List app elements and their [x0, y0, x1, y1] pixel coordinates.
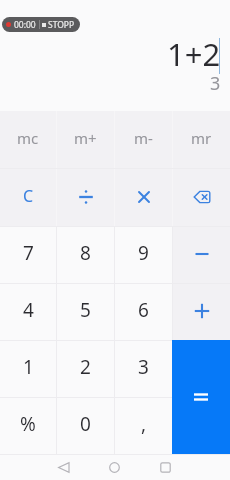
staticText: mr — [191, 128, 212, 148]
button[interactable]: 0 — [57, 398, 114, 454]
button[interactable]: 1 — [0, 341, 56, 397]
staticText: 5 — [80, 297, 91, 323]
button[interactable]: Plus — [173, 284, 230, 340]
button[interactable]: 9 — [115, 227, 172, 283]
button[interactable]: , — [115, 398, 172, 454]
staticText: C — [23, 185, 34, 207]
staticText: 4 — [23, 297, 34, 323]
button[interactable]: Back — [50, 454, 76, 480]
button[interactable]: Recents — [152, 454, 178, 480]
staticText: 8 — [80, 240, 91, 266]
staticText: m+ — [74, 128, 97, 148]
button[interactable]: Divide — [57, 169, 114, 226]
staticText: 6 — [138, 297, 149, 323]
staticText: 2 — [80, 354, 91, 380]
staticText: 1 — [23, 354, 34, 380]
staticText: m- — [134, 128, 153, 148]
button[interactable]: 4 — [0, 284, 56, 340]
button[interactable]: Home — [101, 454, 127, 480]
button[interactable]: C — [0, 169, 56, 226]
button[interactable]: 5 — [57, 284, 114, 340]
button[interactable]: 3 — [115, 341, 172, 397]
button[interactable]: m- — [115, 111, 172, 168]
button[interactable]: Screen recording, 00:00, stop — [6, 17, 75, 32]
button[interactable]: Multiply — [115, 169, 172, 226]
button[interactable]: Equals — [172, 340, 230, 454]
button[interactable]: 8 — [57, 227, 114, 283]
button[interactable]: Minus — [173, 227, 230, 283]
staticText: 0 — [80, 411, 91, 437]
button[interactable]: 2 — [57, 341, 114, 397]
button[interactable]: m+ — [57, 111, 114, 168]
staticText: 3 — [138, 354, 149, 380]
staticText: mc — [17, 128, 39, 148]
button[interactable]: Backspace — [173, 169, 230, 226]
staticText: STOPP — [48, 19, 75, 31]
staticText: 9 — [138, 240, 149, 266]
staticText: 3 — [210, 71, 221, 96]
button[interactable]: 6 — [115, 284, 172, 340]
button[interactable]: 7 — [0, 227, 56, 283]
staticText: 7 — [23, 240, 34, 266]
button[interactable]: mc — [0, 111, 56, 168]
staticText: , — [141, 411, 147, 437]
button[interactable]: mr — [173, 111, 230, 168]
staticText: 1+2 — [167, 33, 221, 75]
staticText: 00:00 — [14, 19, 36, 31]
staticText: % — [20, 411, 36, 437]
button[interactable]: % — [0, 398, 56, 454]
